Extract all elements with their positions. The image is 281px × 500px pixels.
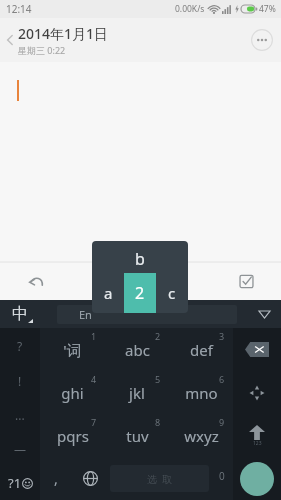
- staticText: pqrs: [57, 426, 89, 446]
- button[interactable]: —: [0, 432, 40, 466]
- button[interactable]: Undo: [0, 262, 71, 300]
- staticText: 2: [135, 282, 145, 304]
- staticText: 12:14: [6, 2, 32, 16]
- staticText: 星期三 0:22: [18, 44, 66, 56]
- staticText: ghi: [61, 383, 84, 403]
- button[interactable]: Checklist: [211, 262, 281, 300]
- button[interactable]: ,: [40, 457, 72, 500]
- staticText: wxyz: [184, 426, 219, 446]
- staticText: 0: [219, 469, 225, 483]
- button[interactable]: abc: [105, 328, 169, 371]
- staticText: 1: [91, 330, 97, 342]
- button[interactable]: Shift: [233, 414, 281, 457]
- button[interactable]: Back: [5, 32, 15, 48]
- staticText: 选 取: [147, 472, 173, 486]
- button[interactable]: Switch language: [72, 457, 108, 500]
- button[interactable]: tuv: [105, 414, 169, 457]
- button[interactable]: ?1: [0, 466, 40, 500]
- staticText: abc: [125, 340, 150, 360]
- button[interactable]: ...: [0, 398, 40, 432]
- button[interactable]: Move cursor: [233, 371, 281, 414]
- button[interactable]: wxyz: [169, 414, 233, 457]
- staticText: 2014年1月1日: [18, 24, 109, 43]
- staticText: En: [79, 307, 92, 322]
- button[interactable]: pqrs: [40, 414, 105, 457]
- staticText: 4: [91, 373, 97, 385]
- button[interactable]: Redo: [71, 262, 141, 300]
- button[interactable]: ghi: [40, 371, 105, 414]
- staticText: 0.00K/s: [175, 3, 205, 15]
- staticText: ,: [54, 469, 58, 488]
- staticText: 9: [219, 416, 225, 428]
- staticText: ...: [15, 407, 25, 423]
- button[interactable]: def: [169, 328, 233, 371]
- button[interactable]: ?: [0, 328, 40, 363]
- staticText: 5: [155, 373, 161, 385]
- staticText: c: [168, 283, 176, 303]
- staticText: tuv: [126, 426, 149, 446]
- button[interactable]: 选 取: [110, 465, 209, 492]
- button[interactable]: Insert image: [141, 262, 211, 300]
- button[interactable]: mno: [169, 371, 233, 414]
- staticText: '词: [63, 340, 82, 360]
- button[interactable]: 0: [211, 457, 233, 500]
- staticText: —: [14, 441, 27, 457]
- staticText: 123: [253, 440, 262, 447]
- staticText: 47%: [259, 3, 276, 15]
- staticText: 3: [219, 330, 225, 342]
- staticText: ?1: [8, 474, 22, 492]
- staticText: def: [190, 340, 213, 360]
- staticText: 8: [155, 416, 161, 428]
- button[interactable]: En: [57, 305, 237, 324]
- staticText: ?: [17, 338, 23, 354]
- button[interactable]: Enter: [240, 462, 274, 496]
- button[interactable]: jkl: [105, 371, 169, 414]
- staticText: mno: [185, 383, 218, 403]
- staticText: a: [104, 283, 113, 303]
- staticText: 7: [91, 416, 97, 428]
- button[interactable]: !: [0, 363, 40, 398]
- button[interactable]: More options: [251, 29, 273, 51]
- button[interactable]: 中: [0, 300, 44, 328]
- staticText: jkl: [129, 383, 145, 403]
- staticText: b: [135, 248, 145, 270]
- staticText: 6: [219, 373, 225, 385]
- staticText: !: [18, 373, 22, 389]
- button[interactable]: Delete: [233, 328, 281, 371]
- button[interactable]: Hide keyboard: [247, 300, 281, 328]
- button[interactable]: '词: [40, 328, 105, 371]
- staticText: 中: [12, 304, 28, 324]
- staticText: 2: [155, 330, 161, 342]
